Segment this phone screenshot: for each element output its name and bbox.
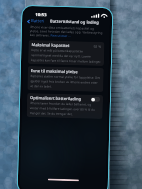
staticText: Batteritilstand og lading xyxy=(50,19,99,25)
staticText: 92 % xyxy=(93,44,101,49)
staticText: Batteri xyxy=(31,18,45,24)
staticText: 10:53 xyxy=(35,11,47,16)
staticText: Optimalisert batterilading xyxy=(30,95,82,101)
staticText: iPhone viser data om batteriets kapasite… xyxy=(30,25,104,39)
staticText: Maksimal kapasitet xyxy=(31,42,70,48)
staticText: iPhone lærer hvordan du lader batteriet,… xyxy=(30,101,100,117)
button[interactable]: Evne til maksimal ytelse xyxy=(27,66,104,92)
button[interactable]: Optimalisert batterilading xyxy=(91,97,100,102)
button[interactable]: Maksimal kapasitet xyxy=(28,40,104,66)
button[interactable]: Back xyxy=(27,18,45,24)
button[interactable]: Optimalisert batterilading xyxy=(30,95,100,102)
staticText: Batteriet støtter normal ytelse for topp… xyxy=(30,74,101,90)
staticText: Evne til maksimal ytelse xyxy=(31,68,78,74)
staticText: Dette er et mål på batterikapasiteten sa… xyxy=(31,48,101,64)
other: Back xyxy=(27,19,30,24)
